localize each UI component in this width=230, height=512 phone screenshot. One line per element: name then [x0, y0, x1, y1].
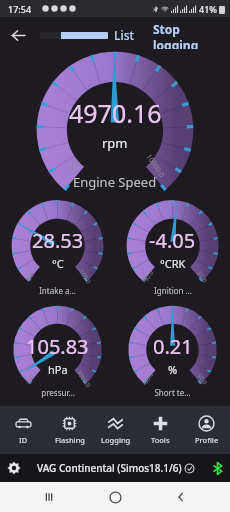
button[interactable]: -4.05	[115, 193, 230, 299]
staticText: -90.0	[141, 269, 155, 285]
button[interactable]: Back	[164, 482, 198, 512]
button[interactable]: Settings	[0, 454, 28, 482]
staticText: Profile	[195, 435, 219, 445]
staticText: 0.0	[25, 271, 36, 283]
button[interactable]: 0.21	[115, 299, 230, 401]
staticText: rpm	[102, 134, 128, 152]
button[interactable]: 28.53	[0, 193, 115, 299]
staticText: pressur…	[41, 387, 75, 398]
button[interactable]: 105.83	[0, 299, 115, 401]
staticText: %	[168, 362, 178, 377]
staticText: °C	[52, 256, 64, 271]
staticText: 28.53	[32, 227, 84, 254]
staticText: Intake a…	[39, 285, 76, 296]
staticText: 41%	[199, 3, 217, 15]
staticText: 105.83	[26, 333, 89, 360]
button[interactable]: Home	[98, 482, 132, 512]
staticText: Short te…	[154, 387, 191, 398]
button[interactable]: Recents	[32, 482, 66, 512]
staticText: 0.21	[153, 333, 193, 360]
button[interactable]: Back	[0, 17, 36, 53]
button[interactable]: Flashing	[47, 406, 92, 454]
staticText: Tools	[151, 435, 170, 445]
button[interactable]: Logging	[93, 406, 138, 454]
button[interactable]: Bluetooth connected	[204, 455, 230, 481]
staticText: 3000.0	[75, 369, 92, 389]
staticText: 17:54	[8, 3, 32, 15]
staticText: hPa	[48, 362, 68, 377]
staticText: -4.05	[149, 227, 196, 254]
staticText: Flashing	[55, 435, 85, 445]
staticText: Logging	[101, 435, 131, 445]
staticText: Ignition …	[154, 285, 192, 296]
button[interactable]: Stop logging	[147, 17, 230, 53]
staticText: ID	[19, 435, 28, 445]
staticText: Engine Speed	[73, 173, 157, 191]
staticText: List	[114, 27, 135, 43]
button[interactable]: 4970.16	[26, 53, 204, 193]
staticText: 4970.16	[69, 96, 162, 130]
staticText: 91.0	[195, 270, 209, 284]
staticText: °CRK	[160, 256, 186, 271]
staticText: -50.0	[141, 371, 155, 387]
staticText: 10000.0	[143, 152, 166, 179]
staticText: 0.0	[67, 159, 81, 173]
staticText: VAG Continental (Simos18.1/6)	[37, 461, 182, 475]
button[interactable]: List	[108, 23, 141, 47]
staticText: Stop logging	[153, 21, 224, 49]
staticText: 50.0	[195, 372, 209, 386]
staticText: 100.0	[77, 268, 93, 286]
button[interactable]: Profile	[184, 406, 229, 454]
staticText: 0.0	[25, 373, 36, 385]
button[interactable]: Tools	[138, 406, 183, 454]
button[interactable]: ID	[1, 406, 46, 454]
